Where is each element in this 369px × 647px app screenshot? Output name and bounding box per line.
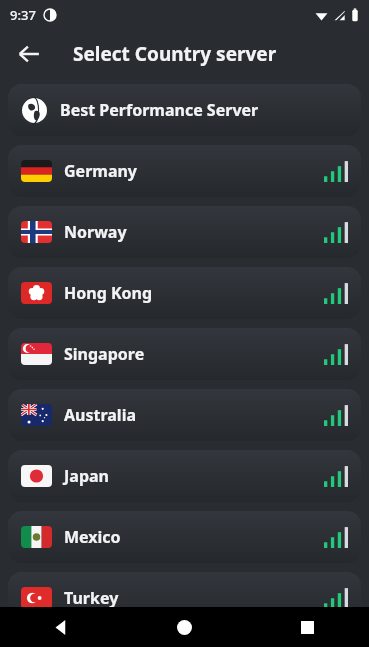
- staticText: Germany: [64, 160, 138, 182]
- staticText: Norway: [64, 221, 127, 243]
- button[interactable]: Hong Kong: [8, 267, 361, 319]
- staticText: Best Performance Server: [60, 99, 259, 121]
- staticText: Hong Kong: [64, 282, 153, 304]
- button[interactable]: Home: [123, 607, 246, 647]
- button[interactable]: Turkey: [8, 572, 361, 624]
- staticText: Australia: [64, 404, 137, 426]
- staticText: Japan: [64, 465, 109, 487]
- button[interactable]: Best Performance Server: [8, 84, 361, 136]
- button[interactable]: Recent apps: [246, 607, 369, 647]
- button[interactable]: Back: [0, 607, 123, 647]
- button[interactable]: Australia: [8, 389, 361, 441]
- button[interactable]: Mexico: [8, 511, 361, 563]
- staticText: 9:37: [10, 6, 36, 24]
- button[interactable]: Japan: [8, 450, 361, 502]
- staticText: Mexico: [64, 526, 121, 548]
- staticText: Turkey: [64, 587, 119, 609]
- button[interactable]: Back: [8, 33, 50, 75]
- staticText: Singapore: [64, 343, 145, 365]
- button[interactable]: Singapore: [8, 328, 361, 380]
- button[interactable]: Germany: [8, 145, 361, 197]
- button[interactable]: Norway: [8, 206, 361, 258]
- staticText: Select Country server: [73, 41, 277, 67]
